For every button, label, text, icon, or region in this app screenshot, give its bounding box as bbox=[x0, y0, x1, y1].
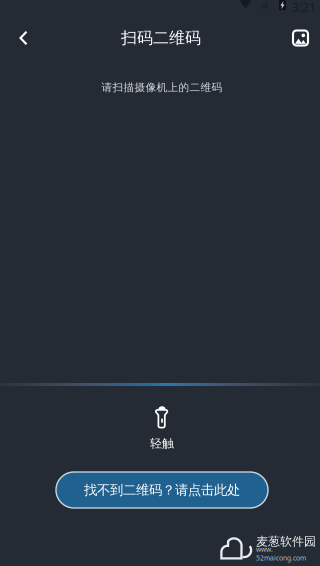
staticText: www.52maicong.com bbox=[256, 545, 306, 562]
staticText: 请扫描摄像机上的二维码 bbox=[101, 81, 222, 94]
staticText: 找不到二维码？请点击此处 bbox=[84, 482, 240, 498]
staticText: 扫码二维码 bbox=[121, 28, 201, 48]
staticText: 3:21 bbox=[292, 0, 316, 15]
button[interactable]: 相册 bbox=[281, 16, 320, 60]
button[interactable]: 返回 bbox=[0, 16, 47, 60]
staticText: 轻触 bbox=[150, 436, 174, 451]
button[interactable]: 轻触 bbox=[127, 406, 197, 450]
staticText: 麦葱软件园 bbox=[256, 534, 316, 549]
button[interactable]: 找不到二维码？请点击此处 bbox=[56, 472, 268, 508]
